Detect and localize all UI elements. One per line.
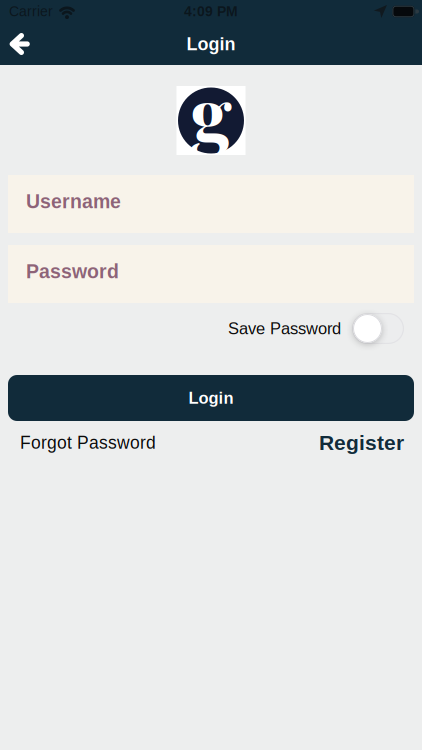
button[interactable]: Save Password	[352, 313, 404, 344]
staticText: Register	[319, 431, 404, 454]
button[interactable]: Login	[8, 375, 414, 421]
button[interactable]: Back	[0, 23, 44, 65]
staticText: Login	[188, 389, 233, 407]
button[interactable]: Password	[8, 245, 414, 303]
staticText: Username	[26, 191, 121, 212]
staticText: g	[190, 62, 231, 161]
staticText: Carrier	[9, 4, 53, 19]
button[interactable]: Forgot Password	[20, 433, 156, 453]
button[interactable]: Username	[8, 175, 414, 233]
staticText: Password	[26, 261, 119, 282]
staticText: Login	[186, 34, 235, 54]
button[interactable]: Register	[319, 431, 404, 454]
staticText: 4:09 PM	[184, 4, 238, 19]
staticText: Forgot Password	[20, 433, 156, 453]
staticText: Save Password	[228, 319, 341, 338]
